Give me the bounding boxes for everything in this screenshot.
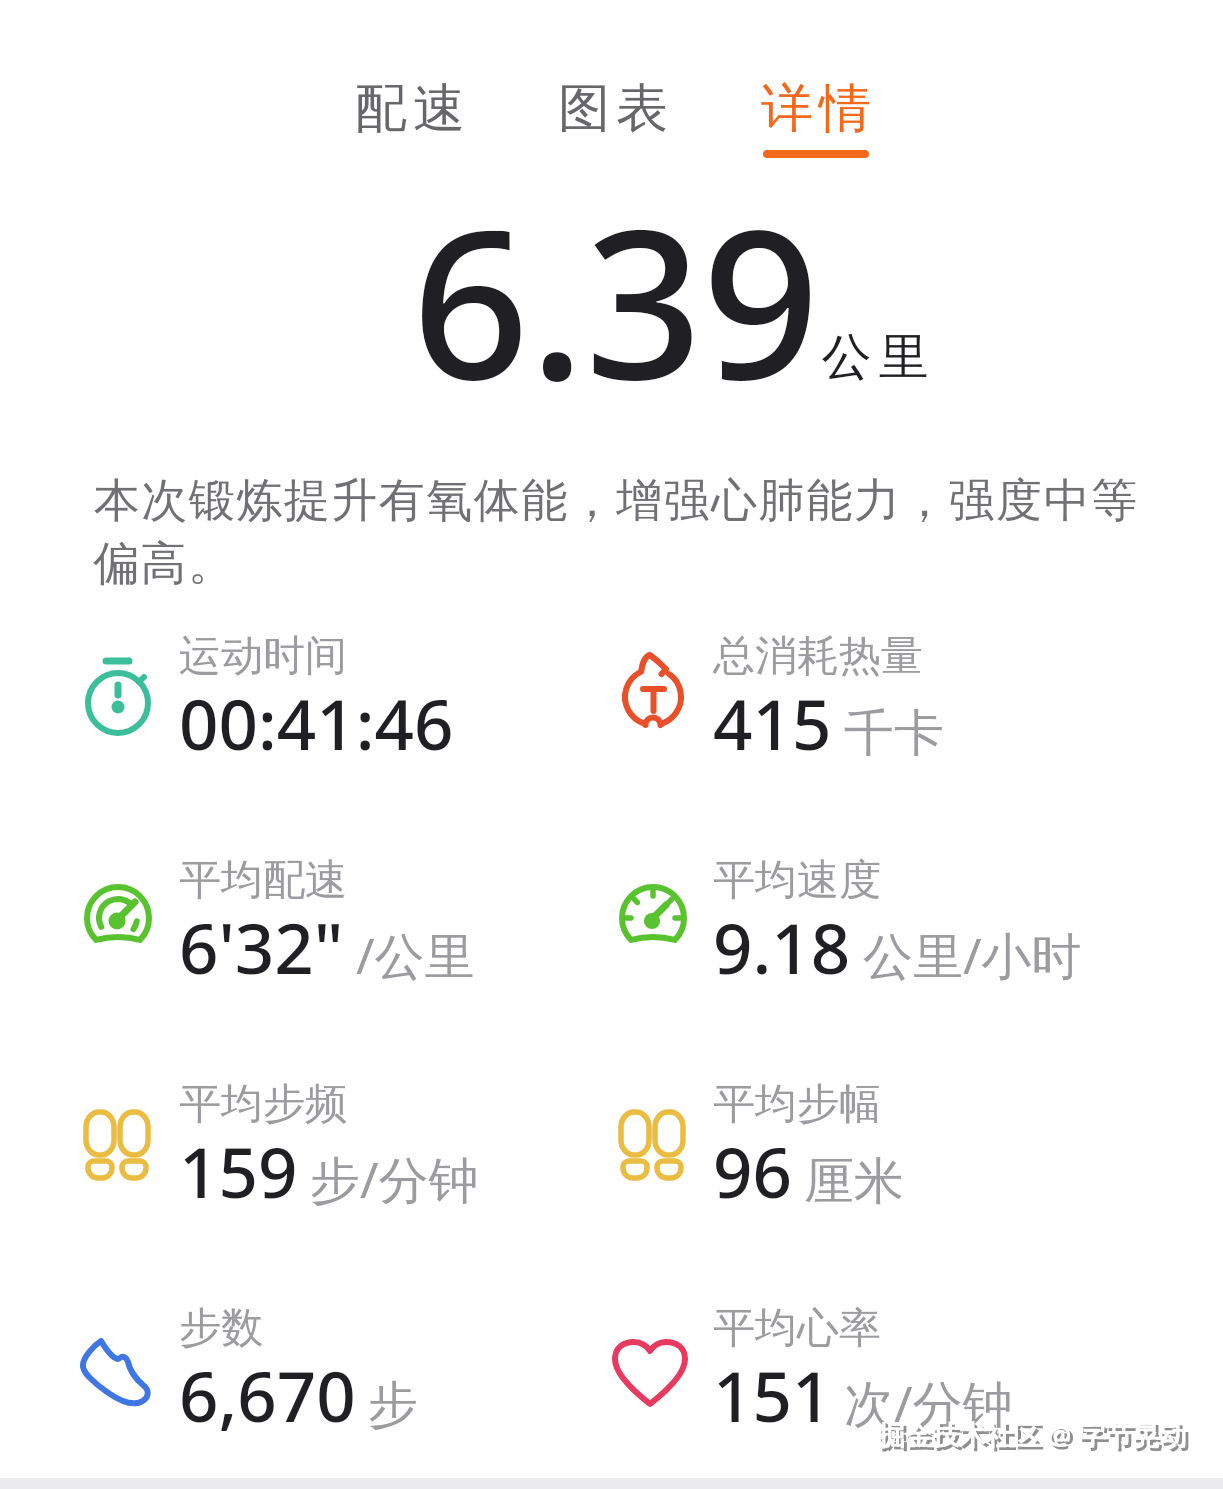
button[interactable]: 平均速度 [713, 854, 1082, 1001]
staticText: 次/分钟 [844, 1369, 1013, 1437]
button[interactable]: 步数 [179, 1302, 418, 1449]
staticText: 159 [179, 1124, 298, 1218]
staticText: 步 [368, 1374, 418, 1437]
button[interactable]: 总消耗热量 [713, 630, 944, 777]
button[interactable]: 详情 [714, 76, 918, 158]
staticText: 平均速度 [713, 854, 881, 907]
staticText: 掘金技术社区 @ 字节晃动 [878, 1416, 1187, 1453]
button[interactable]: 平均步频 [179, 1078, 479, 1225]
staticText: /公里 [356, 921, 475, 989]
staticText: 厘米 [804, 1150, 904, 1213]
button[interactable]: 平均心率 [713, 1302, 1013, 1449]
staticText: 9.18 [713, 900, 851, 994]
staticText: 公里 [818, 326, 932, 389]
staticText: 运动时间 [179, 630, 347, 683]
button[interactable]: 平均配速 [179, 854, 475, 1001]
staticText: 96 [713, 1124, 792, 1218]
staticText: 千卡 [844, 702, 944, 765]
staticText: 6'32" [179, 900, 344, 994]
button[interactable]: 运动时间 [179, 630, 454, 777]
staticText: 掘金技术社区 @ 字节晃动 [881, 1419, 1190, 1456]
staticText: 总消耗热量 [713, 630, 923, 683]
staticText: 6.39 [412, 160, 820, 439]
staticText: 配速 [352, 76, 468, 142]
staticText: 415 [713, 676, 832, 770]
button[interactable]: 图表 [511, 76, 715, 158]
staticText: 详情 [758, 76, 874, 142]
staticText: 本次锻炼提升有氧体能，增强心肺能力，强度中等 偏高。 [93, 472, 1138, 593]
button[interactable]: 配速 [308, 76, 512, 158]
staticText: 步数 [179, 1302, 263, 1355]
staticText: 平均心率 [713, 1302, 881, 1355]
staticText: 平均配速 [179, 854, 347, 907]
staticText: 公里/小时 [863, 921, 1082, 989]
staticText: 平均步幅 [713, 1078, 881, 1131]
staticText: 6,670 [179, 1348, 356, 1442]
staticText: 平均步频 [179, 1078, 347, 1131]
staticText: 151 [713, 1348, 832, 1442]
staticText: 00:41:46 [179, 676, 454, 770]
staticText: 步/分钟 [310, 1145, 479, 1213]
button[interactable]: 平均步幅 [713, 1078, 904, 1225]
staticText: 图表 [555, 76, 671, 142]
